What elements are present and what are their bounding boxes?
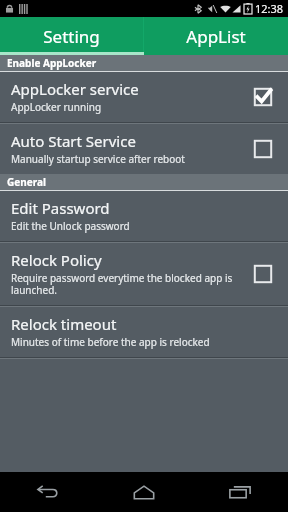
button[interactable]: Setting — [0, 17, 143, 55]
staticText: Auto Start Service — [11, 131, 136, 151]
staticText: General — [7, 175, 46, 189]
button[interactable]: Auto Start Service checkbox — [248, 134, 278, 164]
staticText: Setting — [43, 25, 100, 48]
staticText: Manually startup service after reboot — [11, 152, 185, 166]
staticText: 12:38 — [255, 1, 284, 16]
staticText: Edit Password — [11, 198, 110, 218]
button[interactable]: Back — [0, 472, 96, 512]
button[interactable]: AppLocker service checkbox — [248, 82, 278, 112]
staticText: AppLocker service — [11, 79, 139, 99]
staticText: Minutes of time before the app is relock… — [11, 335, 210, 349]
button[interactable]: Home — [96, 472, 192, 512]
button[interactable]: AppLocker service — [0, 72, 288, 122]
button[interactable]: Relock timeout — [0, 307, 288, 357]
button[interactable]: Auto Start Service — [0, 124, 288, 174]
staticText: AppLocker running — [11, 100, 102, 114]
button[interactable]: Recent apps — [192, 472, 288, 512]
staticText: Relock timeout — [11, 314, 117, 334]
button[interactable]: Edit Password — [0, 191, 288, 241]
staticText: Enable AppLocker — [7, 56, 97, 70]
staticText: AppList — [186, 25, 246, 48]
staticText: Require password everytime the blocked a… — [11, 271, 242, 297]
button[interactable]: Relock Policy — [0, 243, 288, 305]
staticText: Edit the Unlock password — [11, 219, 130, 233]
button[interactable]: AppList — [144, 17, 288, 55]
button[interactable]: Relock Policy checkbox — [248, 259, 278, 289]
staticText: Relock Policy — [11, 250, 102, 270]
